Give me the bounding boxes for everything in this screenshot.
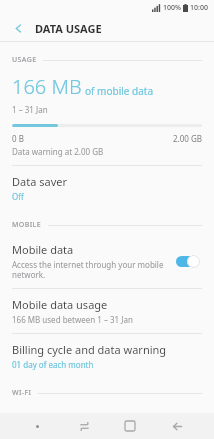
button[interactable]: Mobile data	[0, 234, 214, 288]
staticText: 01 day of each month	[12, 359, 94, 370]
staticText: 166 MB used between 1 – 31 Jan	[12, 314, 133, 325]
staticText: 0 B	[12, 133, 24, 144]
button[interactable]: Mobile data usage	[0, 289, 214, 333]
staticText: 100%	[163, 3, 181, 13]
button[interactable]: Menu	[27, 416, 47, 436]
staticText: Billing cycle and data warning	[12, 342, 167, 357]
staticText: Data saver	[12, 174, 67, 189]
button[interactable]: Back	[8, 18, 28, 38]
staticText: DATA USAGE	[35, 21, 102, 36]
staticText: MOBILE	[12, 220, 42, 230]
button[interactable]: Mobile data toggle	[176, 254, 202, 268]
button[interactable]: Recents	[74, 416, 94, 436]
staticText: 10:00	[190, 3, 208, 13]
staticText: 1 – 31 Jan	[12, 104, 48, 115]
staticText: WI-FI	[12, 388, 32, 398]
button[interactable]: Data saver	[0, 166, 214, 210]
button[interactable]: Back	[167, 416, 187, 436]
button[interactable]: Home	[120, 416, 140, 436]
staticText: Mobile data	[12, 242, 74, 257]
staticText: Mobile data usage	[12, 297, 108, 312]
staticText: 166 MB	[12, 73, 82, 100]
staticText: 2.00 GB	[173, 133, 202, 144]
button[interactable]: Billing cycle and data warning	[0, 334, 214, 378]
staticText: Off	[12, 191, 24, 202]
staticText: Access the internet through your mobile …	[12, 259, 168, 280]
staticText: of mobile data	[85, 84, 154, 98]
staticText: Data warning at 2.00 GB	[12, 146, 104, 157]
staticText: USAGE	[12, 55, 37, 65]
